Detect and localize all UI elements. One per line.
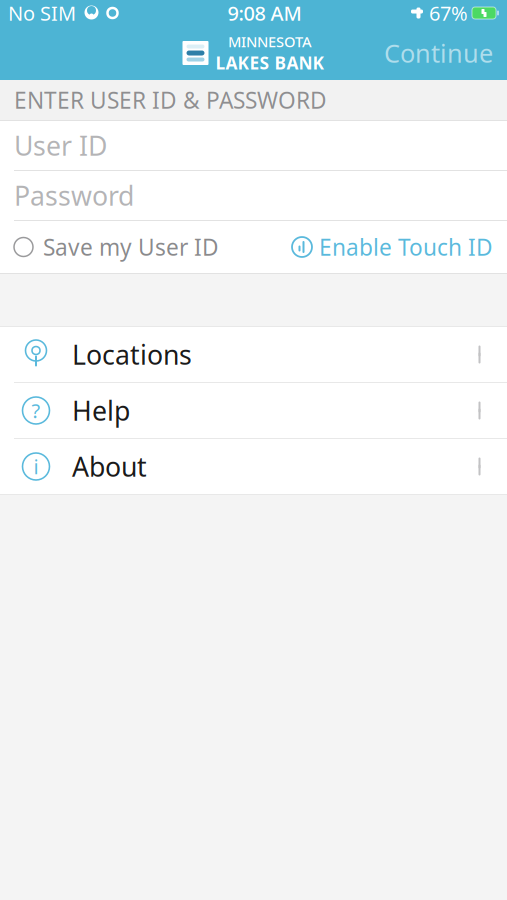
staticText: ENTER USER ID & PASSWORD <box>14 85 327 115</box>
staticText: No SIM <box>8 0 76 26</box>
staticText: About <box>72 449 147 484</box>
staticText: Continue <box>384 36 493 70</box>
staticText: Help <box>72 393 130 428</box>
staticText: i <box>33 453 38 480</box>
button[interactable]: Continue <box>370 28 507 78</box>
staticText: ? <box>31 397 40 424</box>
staticText: 9:08 AM <box>227 0 301 26</box>
staticText: User ID <box>14 128 107 163</box>
staticText: LAKES BANK <box>215 51 324 74</box>
staticText: Enable Touch ID <box>319 232 493 262</box>
button[interactable]: Save my User ID <box>14 222 219 272</box>
staticText: MINNESOTA <box>228 32 312 51</box>
staticText: Save my User ID <box>43 232 219 262</box>
button[interactable]: i <box>0 439 507 495</box>
button[interactable]: Enable Touch ID <box>292 222 493 272</box>
staticText: Password <box>14 178 134 213</box>
staticText: 67% <box>429 0 468 26</box>
staticText: Locations <box>72 337 192 372</box>
button[interactable]: Locations <box>0 327 507 383</box>
button[interactable]: ? <box>0 383 507 439</box>
